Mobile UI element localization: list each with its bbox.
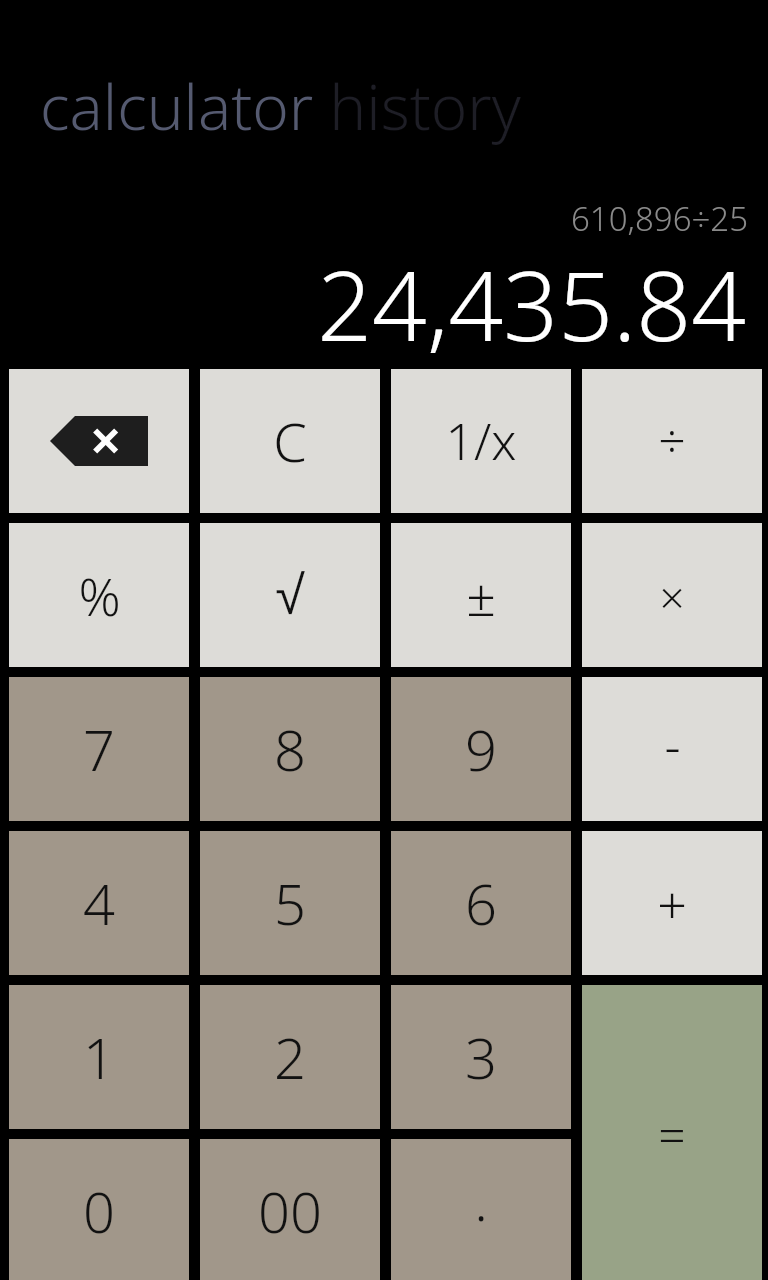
staticText: calculator history [40,64,521,148]
staticText: 3 [465,1019,497,1095]
button[interactable]: 5 [200,831,380,975]
staticText: 00 [258,1173,322,1249]
button[interactable]: - [582,677,762,821]
button[interactable]: 3 [391,985,571,1129]
button[interactable]: Backspace [9,369,189,513]
staticText: 5 [274,865,306,941]
staticText: % [78,560,121,631]
button[interactable]: 2 [200,985,380,1129]
button[interactable]: × [582,523,762,667]
button[interactable]: 0 [9,1139,189,1280]
button[interactable]: 1 [9,985,189,1129]
button[interactable]: C [200,369,380,513]
staticText: 2 [274,1019,306,1095]
staticText: C [273,404,307,478]
button[interactable]: ÷ [582,369,762,513]
button[interactable]: 9 [391,677,571,821]
button[interactable]: = [582,985,762,1280]
button[interactable]: √ [200,523,380,667]
staticText: 610,896÷25 [570,196,748,241]
staticText: 4 [83,865,115,941]
button[interactable]: 6 [391,831,571,975]
staticText: 24,435.84 [317,238,746,369]
staticText: + [657,868,687,939]
button[interactable]: 1/x [391,369,571,513]
staticText: 7 [83,711,115,787]
button[interactable]: 7 [9,677,189,821]
staticText: 1 [83,1019,115,1095]
button[interactable]: 4 [9,831,189,975]
staticText: √ [275,565,305,625]
staticText: . [474,1161,488,1237]
staticText: - [664,711,681,779]
button[interactable]: calculator history [40,64,521,148]
button[interactable]: . [391,1139,571,1280]
staticText: = [658,1102,686,1167]
staticText: × [659,567,685,627]
staticText: 8 [274,711,306,787]
staticText: 1/x [445,407,517,475]
staticText: 6 [465,865,497,941]
button[interactable]: 00 [200,1139,380,1280]
button[interactable]: % [9,523,189,667]
staticText: 9 [465,711,497,787]
staticText: ÷ [658,407,686,472]
button[interactable]: 8 [200,677,380,821]
button[interactable]: ± [391,523,571,667]
staticText: ± [466,560,496,631]
button[interactable]: + [582,831,762,975]
staticText: 0 [83,1173,115,1249]
